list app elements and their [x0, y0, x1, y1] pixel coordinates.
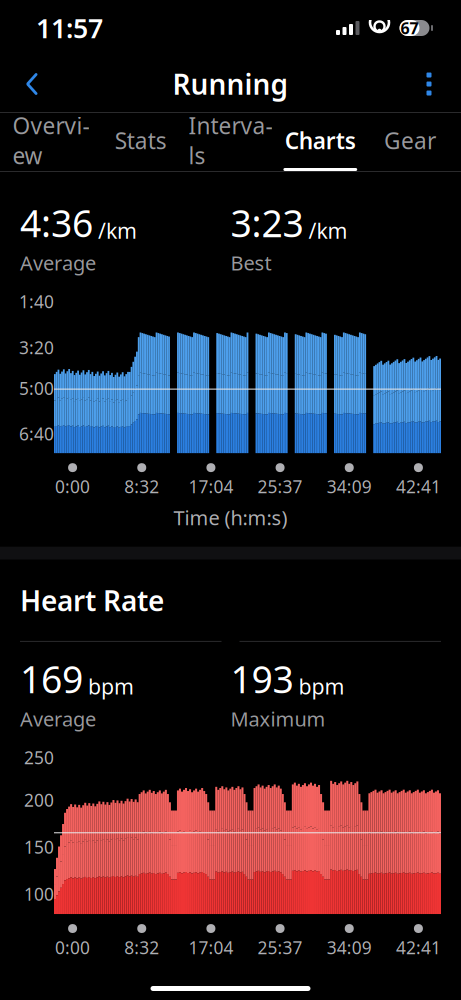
button[interactable]: Intervals	[186, 113, 275, 171]
staticText: 25:37	[258, 936, 303, 959]
staticText: Overview	[12, 110, 89, 171]
staticText: 42:41	[396, 936, 441, 959]
staticText: 169	[20, 654, 83, 703]
staticText: 200	[24, 788, 54, 811]
staticText: bpm	[298, 672, 344, 700]
staticText: 17:04	[188, 936, 233, 959]
button[interactable]: Gear	[365, 113, 455, 171]
staticText: 8:32	[124, 936, 159, 959]
button[interactable]: Stats	[96, 113, 186, 171]
staticText: 42:41	[396, 475, 441, 498]
staticText: Average	[20, 250, 96, 276]
staticText: 100	[24, 882, 54, 905]
staticText: 3:20	[19, 336, 54, 359]
staticText: 150	[24, 835, 54, 858]
button[interactable]: Charts	[275, 113, 365, 171]
staticText: 250	[24, 746, 54, 769]
staticText: 0:00	[55, 936, 90, 959]
staticText: /km	[98, 216, 137, 244]
button[interactable]: More options	[405, 60, 453, 108]
staticText: Maximum	[230, 705, 325, 732]
staticText: Stats	[115, 125, 167, 155]
staticText: Running	[172, 65, 288, 103]
staticText: 3:23	[230, 198, 303, 248]
staticText: 34:09	[327, 936, 372, 959]
staticText: Time (h:m:s)	[173, 504, 287, 531]
staticText: 11:57	[36, 10, 103, 46]
staticText: bpm	[88, 672, 134, 700]
staticText: 17:04	[188, 475, 233, 498]
staticText: 6:40	[19, 422, 54, 445]
staticText: Time (h:m:s)	[173, 965, 287, 992]
staticText: 34:09	[327, 475, 372, 498]
staticText: 67	[400, 17, 418, 39]
staticText: 5:00	[19, 377, 54, 400]
staticText: /km	[308, 216, 347, 244]
button[interactable]: Overview	[6, 113, 96, 171]
staticText: 8:32	[124, 475, 159, 498]
staticText: Average	[20, 705, 96, 732]
button[interactable]: Back	[8, 60, 56, 108]
staticText: 4:36	[20, 198, 93, 248]
staticText: 0:00	[55, 475, 90, 498]
staticText: 193	[230, 654, 293, 703]
staticText: 25:37	[258, 475, 303, 498]
staticText: Intervals	[188, 110, 272, 171]
staticText: Heart Rate	[20, 582, 164, 619]
staticText: 1:40	[19, 290, 54, 313]
staticText: Gear	[384, 125, 436, 155]
staticText: Best	[230, 250, 271, 276]
staticText: Charts	[285, 125, 356, 155]
